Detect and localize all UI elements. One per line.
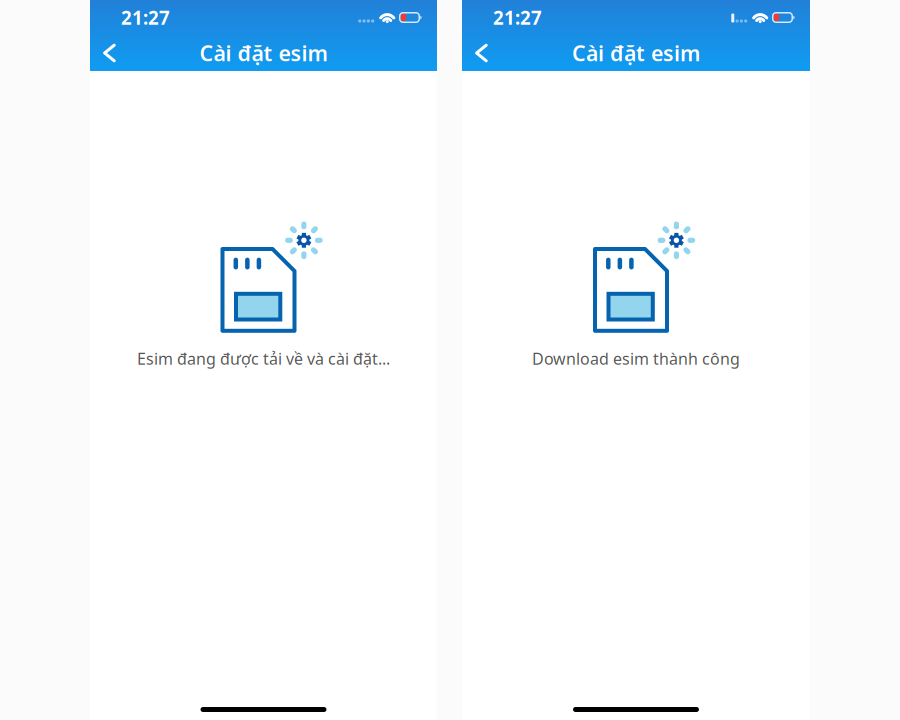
staticText: 21:27 (121, 5, 170, 30)
staticText: 21:27 (493, 5, 542, 30)
staticText: Cài đặt esim (572, 39, 700, 67)
staticText: Esim đang được tải về và cài đặt... (137, 348, 390, 369)
staticText: Cài đặt esim (199, 39, 327, 67)
button[interactable]: Back (462, 35, 500, 71)
staticText: Download esim thành công (532, 348, 740, 369)
button[interactable]: Back (90, 35, 128, 71)
